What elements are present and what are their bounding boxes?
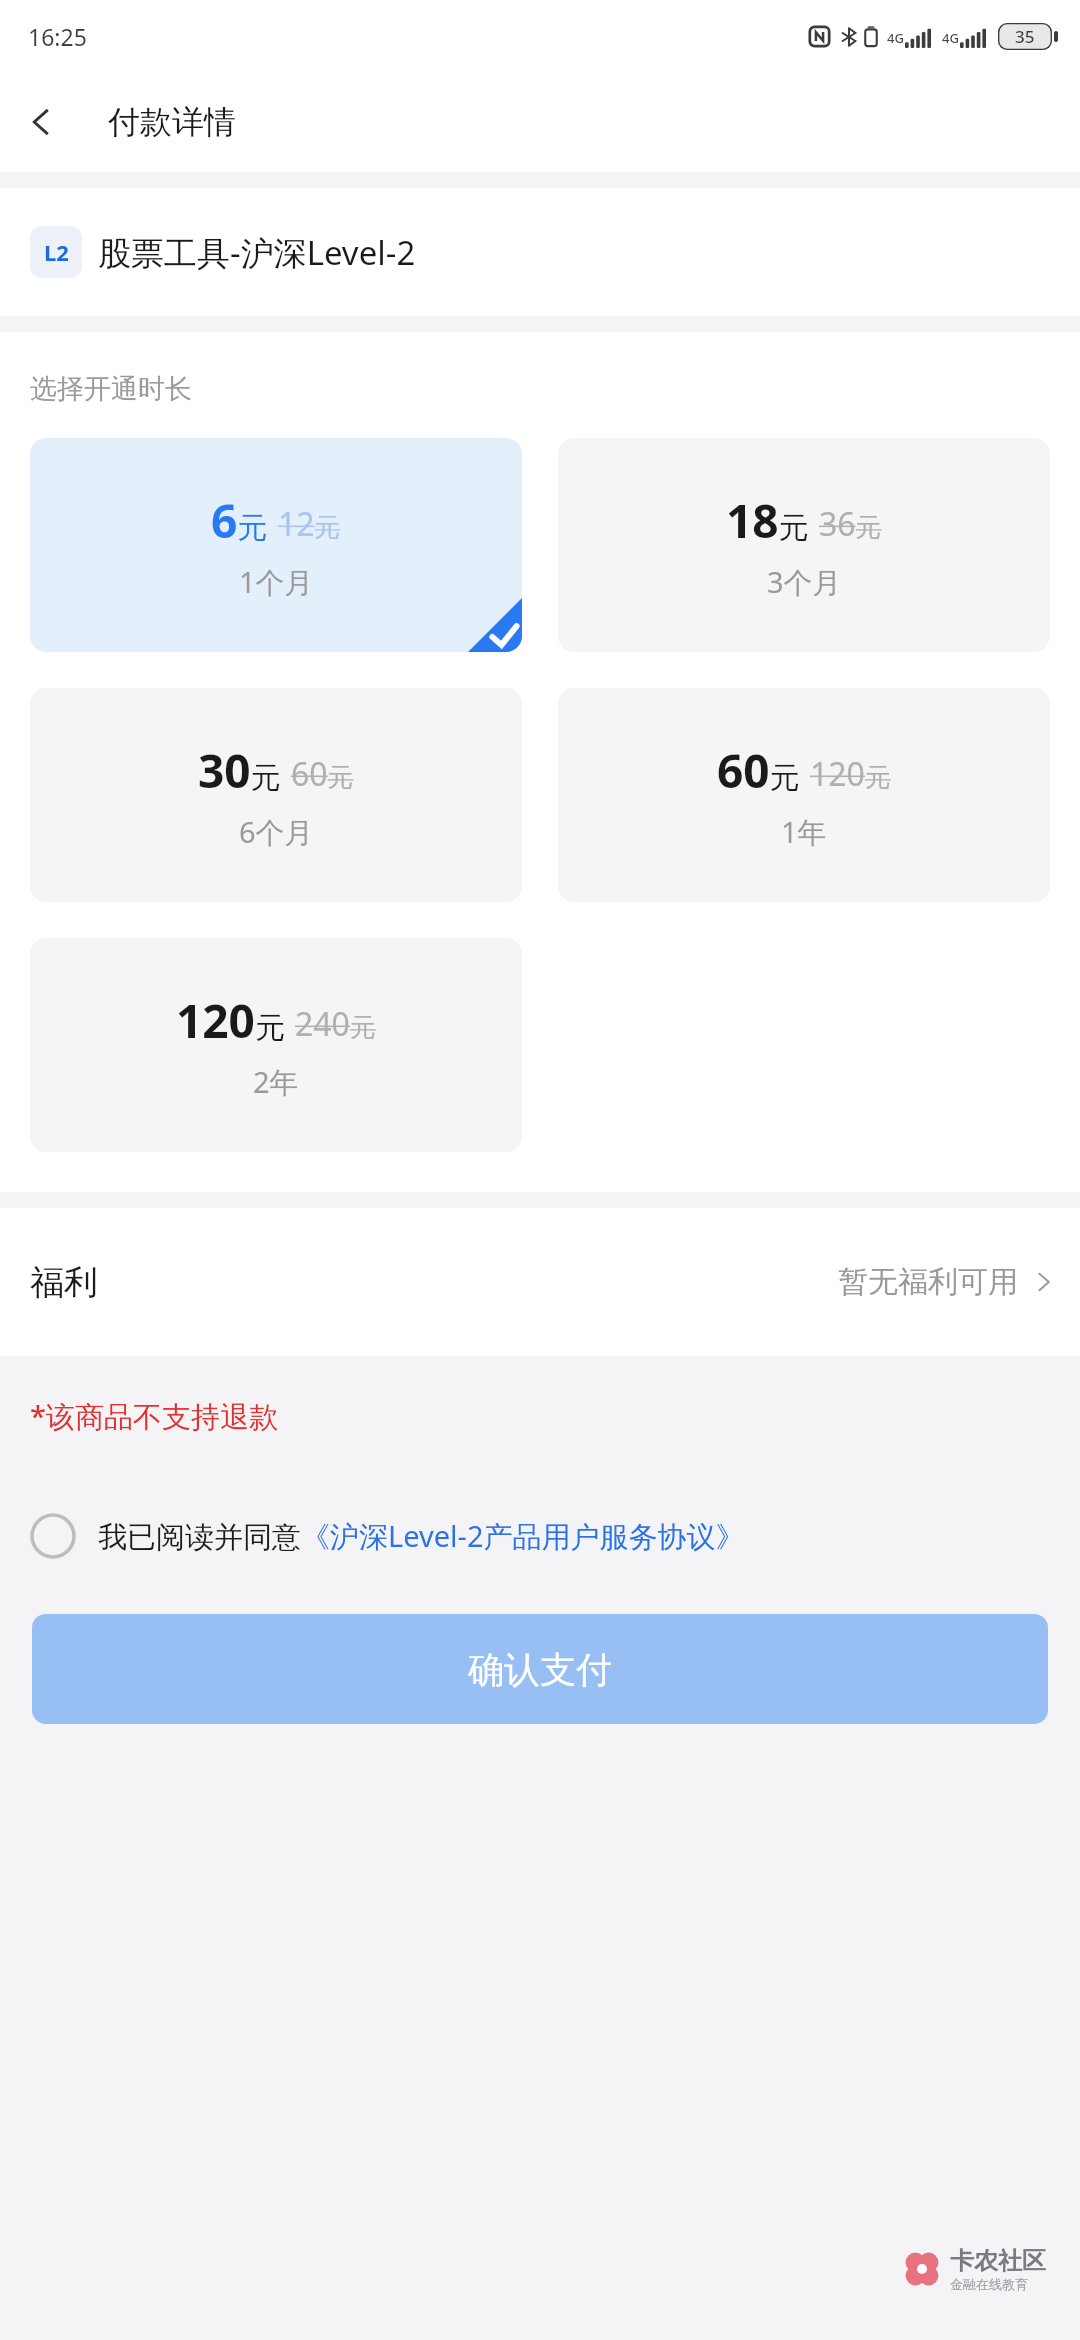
staticText: 35	[1015, 25, 1035, 48]
staticText: 福利	[30, 1261, 98, 1304]
staticText: 1个月	[239, 562, 314, 602]
staticText: 16:25	[28, 21, 87, 52]
staticText: 暂无福利可用	[838, 1263, 1018, 1301]
button[interactable]: 确认支付	[32, 1614, 1048, 1724]
staticText: 确认支付	[468, 1647, 612, 1692]
button[interactable]: 6元	[30, 438, 522, 652]
staticText: 3个月	[767, 562, 842, 602]
staticText: 4G	[887, 29, 904, 47]
staticText: *该商品不支持退款	[30, 1396, 278, 1436]
staticText: L2	[44, 237, 69, 267]
staticText: 60元	[291, 752, 354, 796]
staticText: 120元	[176, 989, 285, 1052]
button[interactable]: Back	[10, 91, 72, 153]
staticText: 36元	[819, 502, 882, 546]
staticText: 1年	[781, 812, 827, 852]
button[interactable]: 18元	[558, 438, 1050, 652]
staticText: 股票工具-沪深Level-2	[98, 230, 416, 275]
staticText: 卡农社区	[950, 2246, 1046, 2276]
staticText: 金融在线教育	[950, 2276, 1028, 2292]
staticText: 60元	[717, 739, 800, 802]
staticText: 选择开通时长	[30, 372, 192, 406]
button[interactable]: 我已阅读并同意《沪深Level-2产品用户服务协议》	[0, 1476, 1080, 1596]
staticText: 我已阅读并同意《沪深Level-2产品用户服务协议》	[98, 1516, 745, 1556]
staticText: 240元	[295, 1002, 376, 1046]
staticText: 12元	[278, 502, 341, 546]
staticText: 6个月	[239, 812, 314, 852]
staticText: 付款详情	[108, 102, 236, 142]
button[interactable]: 福利	[0, 1208, 1080, 1356]
button[interactable]: 120元	[30, 938, 522, 1152]
staticText: 30元	[198, 739, 281, 802]
staticText: 4G	[942, 29, 959, 47]
button[interactable]: 60元	[558, 688, 1050, 902]
staticText: 120元	[810, 752, 891, 796]
staticText: 18元	[726, 489, 809, 552]
button[interactable]: 30元	[30, 688, 522, 902]
staticText: 6元	[211, 489, 268, 552]
staticText: 2年	[253, 1062, 299, 1102]
